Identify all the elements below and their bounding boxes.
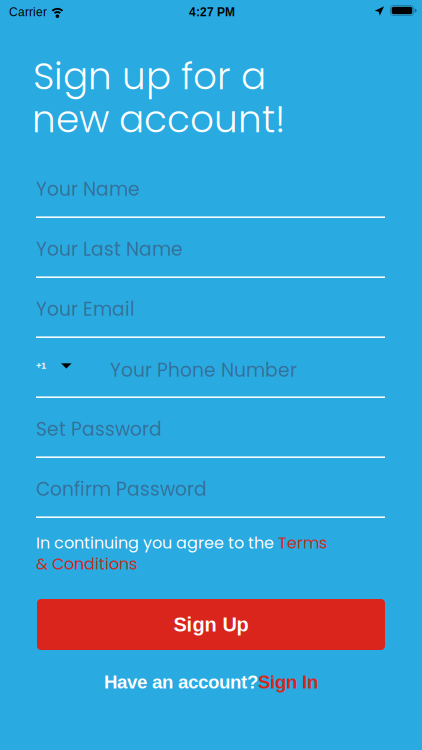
button[interactable]: Terms [278, 532, 327, 554]
staticText: Your Name [36, 176, 140, 202]
staticText: Your Last Name [36, 236, 183, 262]
staticText: Sign up for a [33, 50, 266, 102]
button[interactable]: Set Password [36, 398, 385, 458]
staticText: Have an account? [104, 672, 258, 692]
staticText: Set Password [36, 416, 162, 442]
staticText: Confirm Password [36, 476, 207, 502]
button[interactable]: Your Name [36, 158, 385, 218]
staticText: Carrier [9, 5, 47, 19]
staticText: Your Email [36, 296, 135, 322]
staticText: Your Phone Number [110, 357, 297, 383]
button[interactable]: Sign Up [37, 599, 385, 650]
staticText: +1 [36, 360, 46, 371]
staticText: & Conditions [36, 553, 137, 575]
staticText: new account! [32, 93, 285, 145]
button[interactable]: Your Last Name [36, 218, 385, 278]
button[interactable]: & Conditions [36, 554, 156, 574]
button[interactable]: +1 [36, 360, 110, 380]
button[interactable]: Your Email [36, 278, 385, 338]
staticText: 4:27 PM [189, 5, 235, 19]
staticText: Sign Up [173, 613, 248, 636]
staticText: In continuing you agree to the [36, 532, 278, 554]
staticText: Terms [278, 532, 327, 554]
button[interactable]: Confirm Password [36, 458, 385, 518]
button[interactable]: Sign In [258, 672, 318, 692]
staticText: Sign In [258, 672, 318, 692]
